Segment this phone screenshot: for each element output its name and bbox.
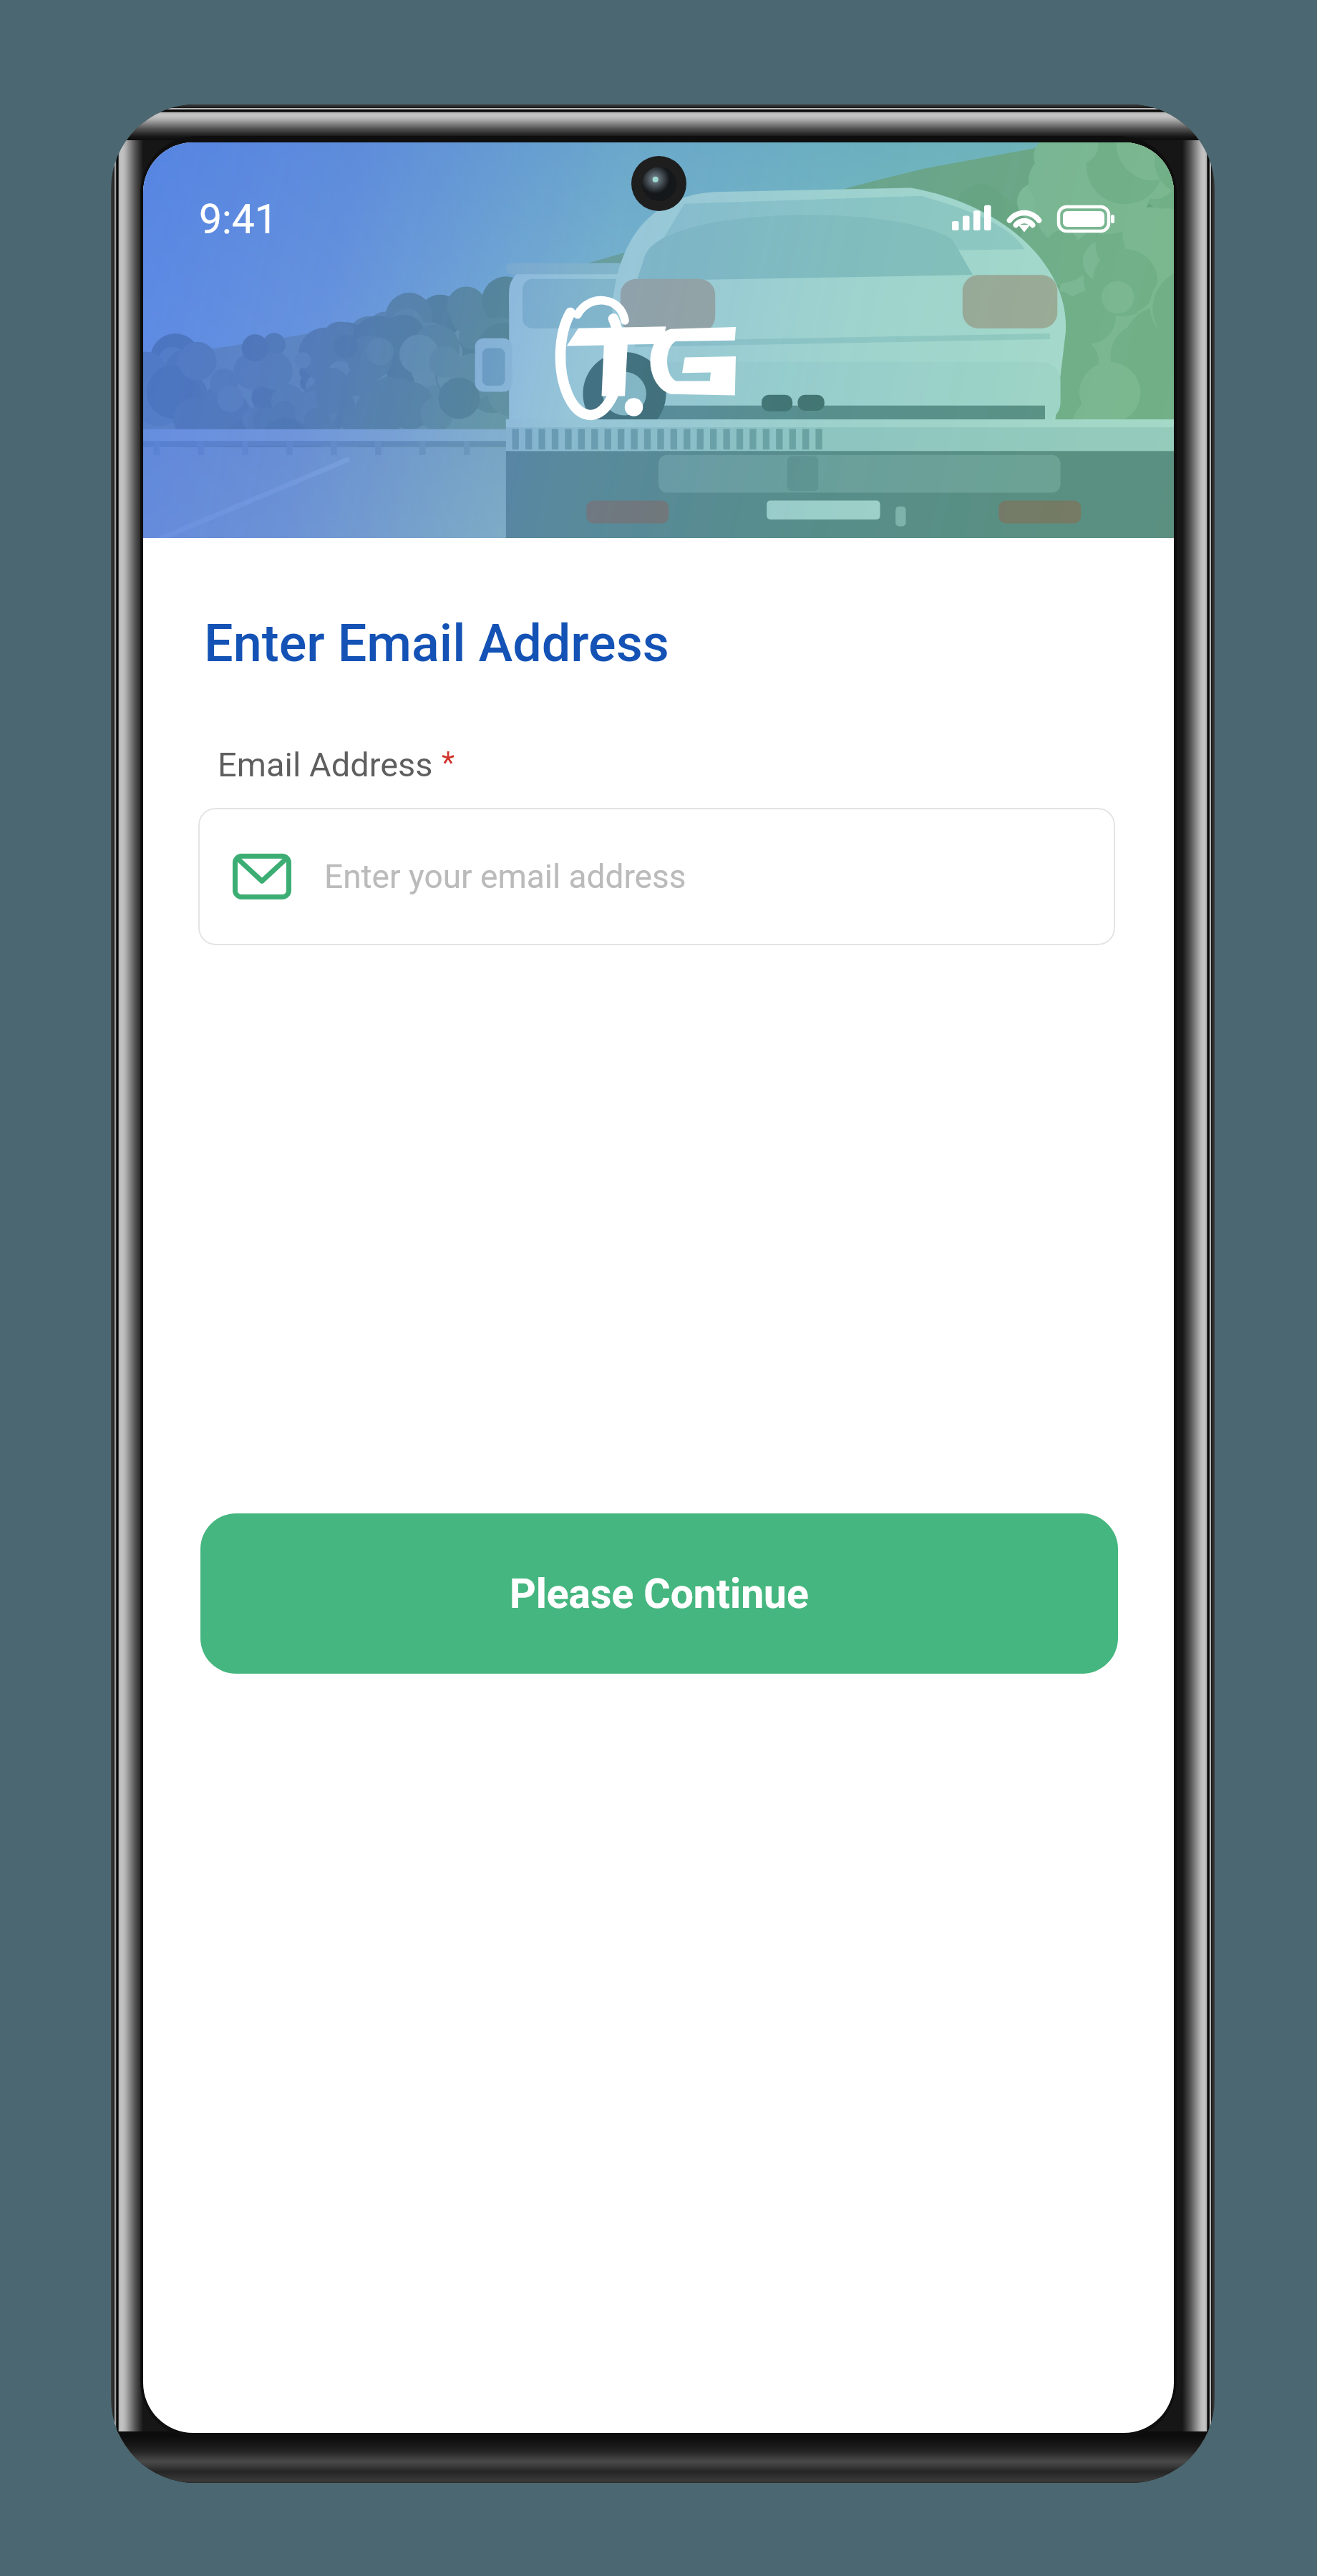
button[interactable]: Email (198, 808, 1115, 945)
other: Email (233, 854, 291, 899)
staticText: Enter Email Address (204, 613, 669, 673)
staticText: * (442, 745, 455, 780)
staticText: Please Continue (510, 1570, 809, 1618)
staticText: Email Address (218, 745, 433, 784)
button[interactable]: Please Continue (200, 1513, 1118, 1674)
staticText: 9:41 (199, 195, 278, 243)
staticText: Enter your email address (324, 857, 686, 896)
